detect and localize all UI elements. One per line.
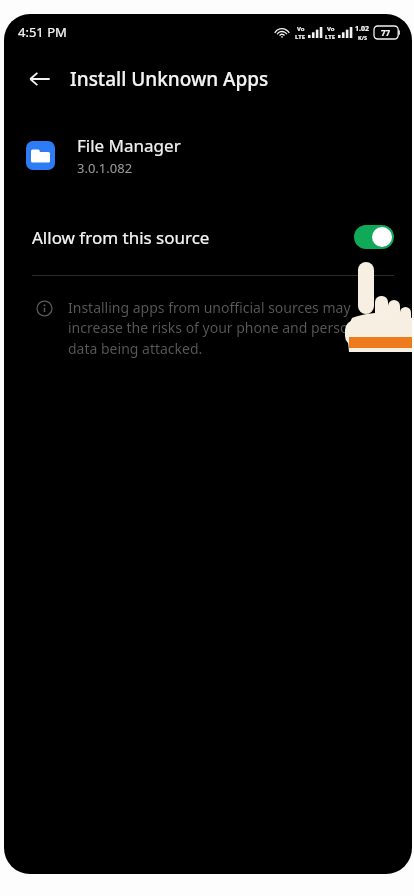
- staticText: 3.0.1.082: [77, 159, 133, 177]
- staticText: 4:51 PM: [18, 23, 67, 41]
- staticText: File Manager: [77, 134, 181, 157]
- staticText: Installing apps from unofficial sources …: [68, 298, 369, 359]
- staticText: 77: [381, 27, 391, 38]
- staticText: Vo: [327, 25, 335, 33]
- staticText: K/S: [358, 34, 367, 41]
- button[interactable]: Allow from this source toggle: [354, 225, 394, 249]
- button[interactable]: Back: [18, 57, 62, 101]
- button[interactable]: Allow from this source: [4, 215, 412, 259]
- staticText: Install Unknown Apps: [70, 66, 269, 92]
- staticText: LTE: [295, 33, 306, 41]
- staticText: LTE: [325, 33, 336, 41]
- staticText: Vo: [297, 25, 305, 33]
- staticText: Allow from this source: [32, 226, 210, 249]
- staticText: 1.02: [355, 24, 369, 34]
- button[interactable]: File Manager: [4, 130, 412, 181]
